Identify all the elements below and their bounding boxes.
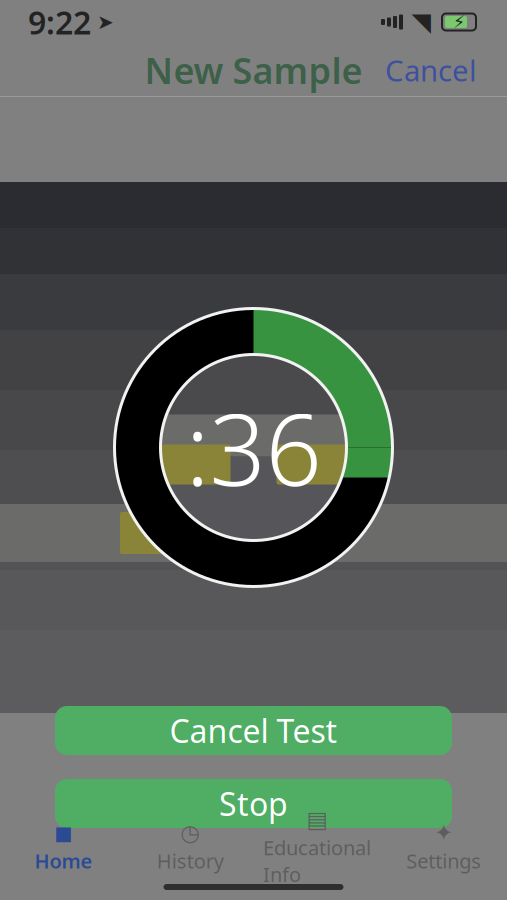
staticText: 9:22 xyxy=(28,1,91,43)
staticText: Stop xyxy=(219,782,288,825)
button[interactable]: ✦ xyxy=(380,822,507,872)
staticText: ◷ xyxy=(180,820,200,846)
button[interactable]: Stop xyxy=(55,779,452,828)
staticText: :36 xyxy=(185,382,321,513)
button[interactable]: ◷ xyxy=(127,822,254,872)
staticText: ▤ xyxy=(306,807,327,832)
staticText: ◥ xyxy=(411,8,430,36)
staticText: ✦ xyxy=(434,820,453,846)
staticText: ◼︎ xyxy=(54,820,73,846)
staticText: New Sample xyxy=(144,46,362,94)
staticText: Cancel xyxy=(385,50,477,89)
staticText: Home xyxy=(34,848,92,874)
staticText: Settings xyxy=(406,848,481,874)
staticText: Educational Info xyxy=(263,834,371,887)
button[interactable]: Cancel Test xyxy=(55,706,452,755)
staticText: Cancel Test xyxy=(169,709,337,752)
button[interactable]: Cancel xyxy=(371,42,491,97)
button[interactable]: ◼︎ xyxy=(0,822,127,872)
staticText: ➤ xyxy=(97,11,114,33)
staticText: ⚡︎ xyxy=(453,12,465,32)
staticText: History xyxy=(157,848,224,874)
button[interactable]: ▤ xyxy=(253,822,380,872)
